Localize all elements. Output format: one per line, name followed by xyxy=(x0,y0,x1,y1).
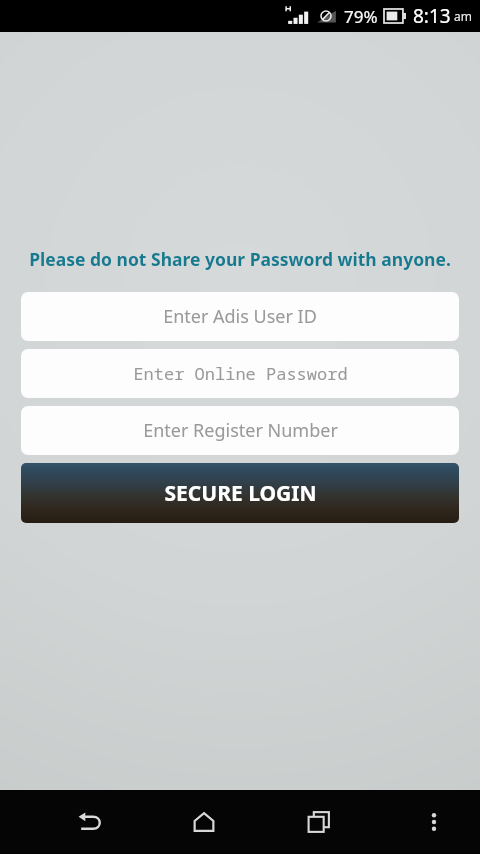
staticText: Enter Register Number xyxy=(143,418,338,443)
staticText: Enter Online Password xyxy=(133,362,348,385)
button[interactable]: Enter Adis User ID xyxy=(21,292,459,341)
staticText: Please do not Share your Password with a… xyxy=(20,247,460,271)
staticText: 79% xyxy=(344,5,378,28)
button[interactable]: SECURE LOGIN xyxy=(21,463,459,523)
staticText: SECURE LOGIN xyxy=(164,479,317,508)
staticText: am xyxy=(454,8,472,24)
staticText: 8:13 xyxy=(413,3,451,29)
button[interactable]: Back xyxy=(62,790,118,854)
button[interactable]: More options xyxy=(406,790,462,854)
button[interactable]: Recent apps xyxy=(291,790,347,854)
button[interactable]: Enter Online Password xyxy=(21,349,459,398)
staticText: Enter Adis User ID xyxy=(163,304,317,329)
button[interactable]: Home xyxy=(176,790,232,854)
button[interactable]: Enter Register Number xyxy=(21,406,459,455)
